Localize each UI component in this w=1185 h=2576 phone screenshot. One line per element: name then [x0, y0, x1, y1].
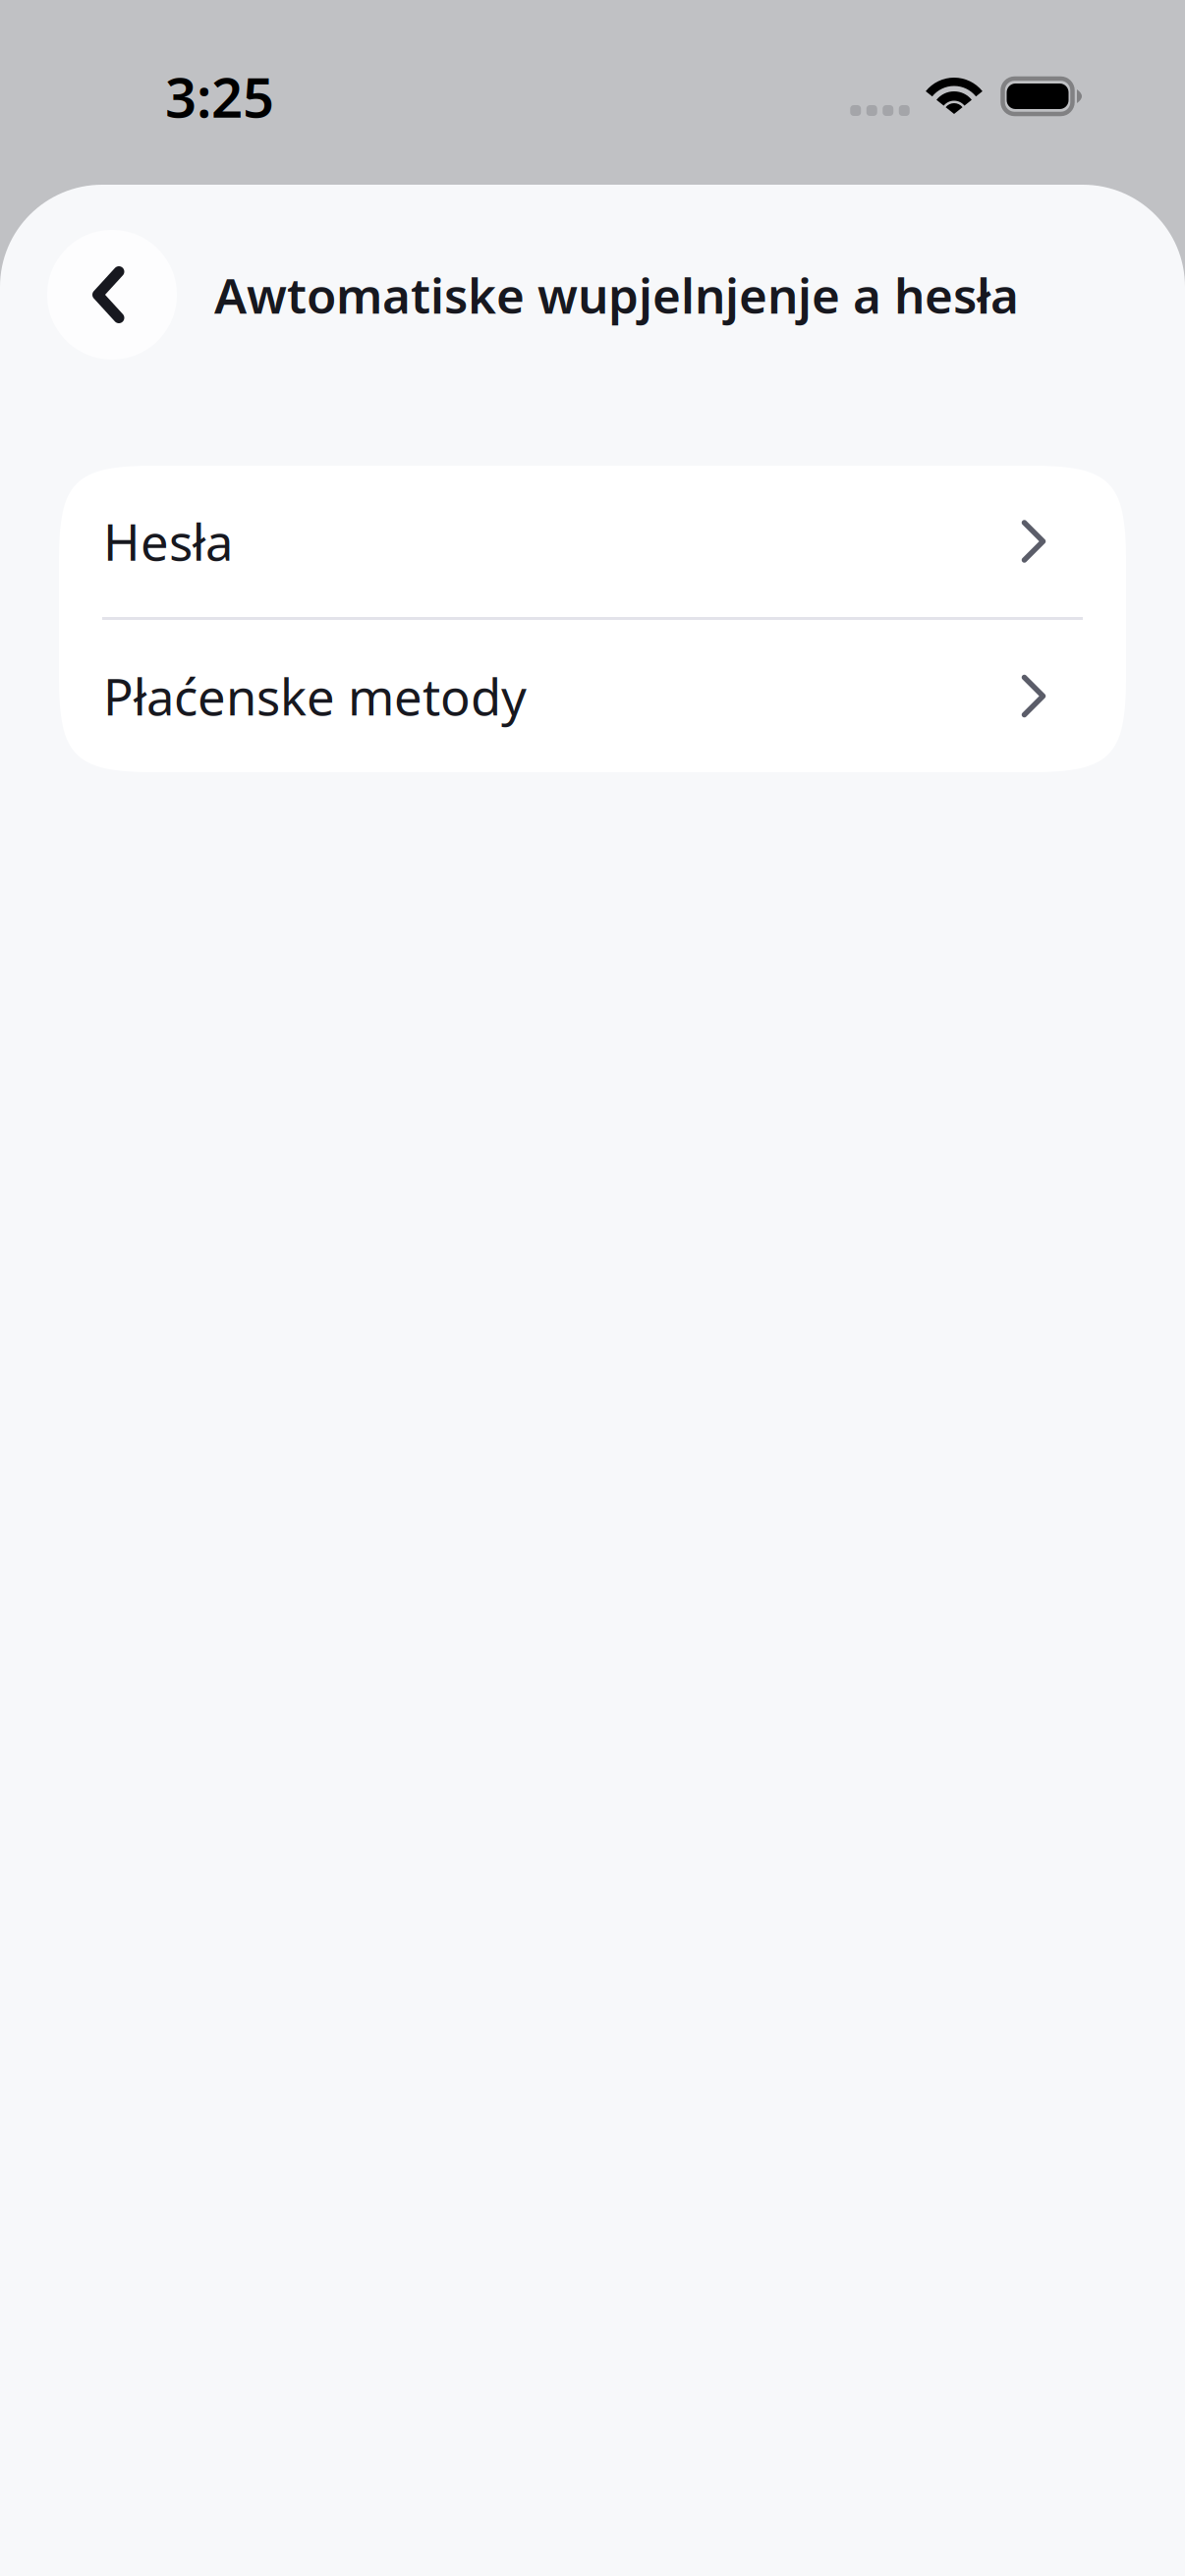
staticText: 3:25 — [165, 60, 274, 133]
staticText: Płaćenske metody — [103, 663, 527, 729]
button[interactable]: Płaćenske metody — [59, 620, 1126, 772]
button[interactable]: Hesła — [59, 466, 1126, 617]
button[interactable]: Back — [47, 230, 177, 360]
staticText: Awtomatiske wupjelnjenje a hesła — [214, 263, 1019, 327]
staticText: Hesła — [103, 508, 233, 574]
